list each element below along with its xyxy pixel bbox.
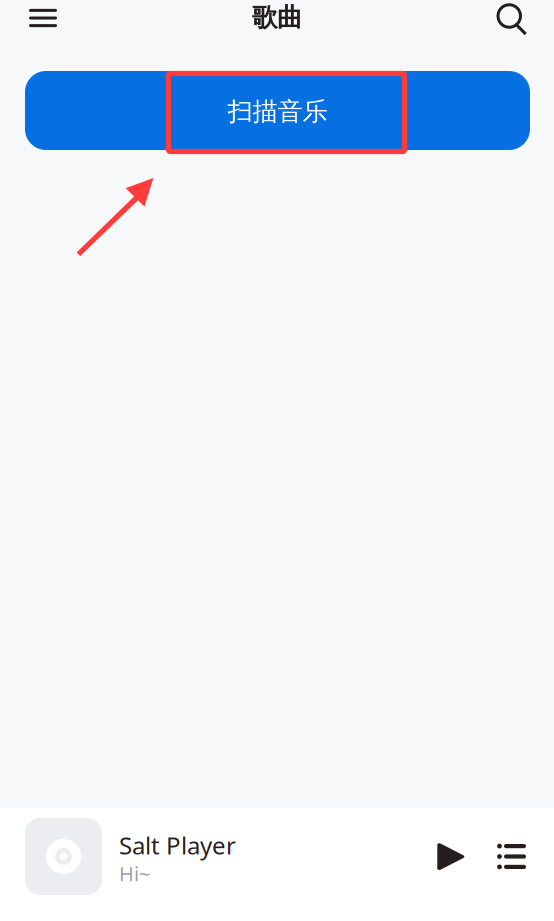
button[interactable]: Salt Player [25, 818, 236, 895]
staticText: Hi~ [119, 860, 150, 887]
staticText: Salt Player [119, 829, 236, 861]
button[interactable]: Search [485, 0, 540, 37]
button[interactable]: Play [429, 834, 476, 879]
button[interactable]: 扫描音乐 [25, 71, 530, 150]
button[interactable]: Playlist [487, 835, 534, 878]
staticText: 扫描音乐 [227, 96, 327, 127]
button[interactable]: Menu [14, 0, 72, 37]
staticText: 歌曲 [252, 2, 302, 33]
